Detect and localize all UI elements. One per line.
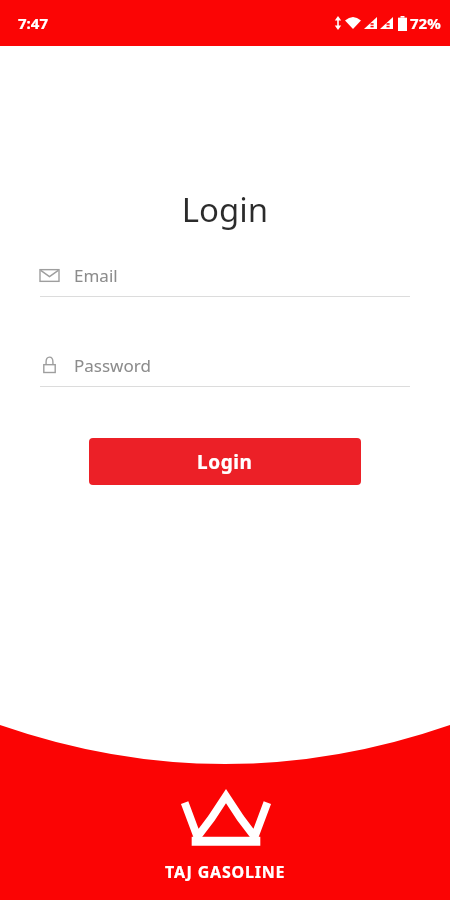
staticText: Login: [197, 449, 253, 475]
button[interactable]: Email: [40, 264, 410, 297]
staticText: TAJ GASOLINE: [165, 861, 286, 883]
button[interactable]: Login: [89, 438, 361, 485]
staticText: Email: [74, 264, 118, 287]
staticText: 72%: [410, 13, 441, 33]
button[interactable]: Password: [40, 354, 410, 387]
staticText: Login: [0, 187, 450, 232]
staticText: 7:47: [18, 13, 48, 33]
staticText: Password: [74, 354, 151, 377]
